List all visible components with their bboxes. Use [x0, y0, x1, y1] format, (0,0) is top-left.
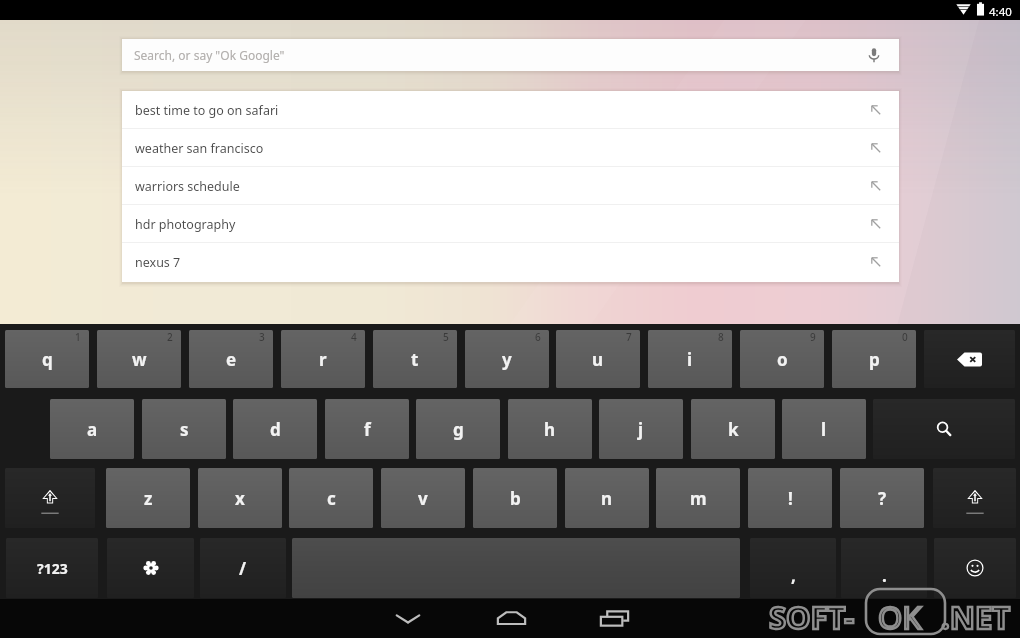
button[interactable]: Voice search	[863, 44, 885, 66]
staticText: ?123	[37, 559, 68, 578]
staticText: d	[270, 418, 281, 441]
button[interactable]: gear	[107, 538, 194, 598]
button[interactable]: d	[233, 399, 317, 459]
button[interactable]: ?	[840, 468, 924, 528]
button[interactable]: emoji	[934, 538, 1016, 598]
button[interactable]: shift	[933, 468, 1016, 528]
button[interactable]: p	[832, 330, 916, 388]
button[interactable]: best time to go on safari	[122, 91, 899, 129]
staticText: SOFT-	[769, 596, 855, 638]
button[interactable]: e	[189, 330, 273, 388]
staticText: 1	[75, 330, 81, 344]
button[interactable]: m	[656, 468, 740, 528]
button[interactable]: Insert suggestion	[867, 139, 885, 157]
button[interactable]: f	[325, 399, 409, 459]
staticText: o	[777, 348, 788, 371]
button[interactable]: x	[198, 468, 282, 528]
staticText: 6	[535, 330, 541, 344]
staticText: x	[235, 487, 245, 510]
staticText: !	[788, 487, 793, 510]
staticText: nexus 7	[135, 254, 181, 271]
button[interactable]: /	[200, 538, 286, 598]
button[interactable]: u	[556, 330, 640, 388]
staticText: y	[502, 348, 512, 371]
staticText: u	[592, 348, 604, 371]
staticText: v	[418, 487, 428, 510]
button[interactable]: ,	[750, 538, 836, 598]
button[interactable]: n	[565, 468, 649, 528]
button[interactable]: Recent apps	[588, 601, 640, 635]
staticText: .NET	[941, 596, 1011, 638]
button[interactable]: k	[691, 399, 775, 459]
button[interactable]: h	[508, 399, 592, 459]
staticText: 8	[718, 330, 724, 344]
button[interactable]: c	[289, 468, 373, 528]
staticText: g	[453, 418, 464, 441]
staticText: c	[327, 487, 336, 510]
staticText: 9	[810, 330, 816, 344]
button[interactable]: Home	[485, 601, 537, 635]
button[interactable]: z	[106, 468, 190, 528]
button[interactable]: ?123	[6, 538, 98, 598]
staticText: t	[411, 348, 419, 371]
button[interactable]: s	[142, 399, 226, 459]
staticText: 3	[259, 330, 265, 344]
button[interactable]: g	[416, 399, 500, 459]
button[interactable]: hdr photography	[122, 205, 899, 243]
staticText: b	[510, 487, 521, 510]
button[interactable]: Insert suggestion	[867, 101, 885, 119]
button[interactable]: backspace	[924, 330, 1015, 388]
button[interactable]: Insert suggestion	[867, 177, 885, 195]
button[interactable]: weather san francisco	[122, 129, 899, 167]
staticText: h	[544, 418, 556, 441]
button[interactable]: o	[740, 330, 824, 388]
staticText: best time to go on safari	[135, 102, 279, 119]
button[interactable]: q	[5, 330, 89, 388]
button[interactable]: space	[292, 538, 740, 598]
staticText: w	[132, 348, 147, 371]
button[interactable]: Insert suggestion	[867, 215, 885, 233]
button[interactable]: b	[473, 468, 557, 528]
staticText: i	[687, 348, 693, 371]
button[interactable]: l	[782, 399, 866, 459]
staticText: Search, or say "Ok Google"	[134, 47, 285, 63]
button[interactable]: Back	[382, 601, 434, 635]
button[interactable]: y	[465, 330, 549, 388]
staticText: hdr photography	[135, 216, 236, 233]
button[interactable]: w	[97, 330, 181, 388]
staticText: l	[821, 418, 827, 441]
button[interactable]: a	[50, 399, 134, 459]
button[interactable]: r	[281, 330, 365, 388]
staticText: p	[869, 348, 880, 371]
staticText: 2	[167, 330, 173, 344]
staticText: warriors schedule	[135, 178, 240, 195]
staticText: s	[180, 418, 189, 441]
button[interactable]: warriors schedule	[122, 167, 899, 205]
staticText: j	[638, 418, 644, 441]
staticText: weather san francisco	[135, 140, 264, 157]
button[interactable]: i	[648, 330, 732, 388]
button[interactable]: v	[381, 468, 465, 528]
button[interactable]: search	[873, 399, 1015, 459]
staticText: q	[42, 348, 53, 371]
staticText: z	[144, 487, 153, 510]
staticText: 0	[902, 330, 908, 344]
button[interactable]: .	[841, 538, 927, 598]
button[interactable]: shift	[5, 468, 95, 528]
staticText: OK	[878, 596, 922, 638]
staticText: e	[226, 348, 237, 371]
staticText: ?	[878, 487, 887, 510]
staticText: m	[690, 487, 707, 510]
button[interactable]: nexus 7	[122, 243, 899, 281]
button[interactable]: t	[373, 330, 457, 388]
staticText: /	[239, 557, 247, 580]
staticText: r	[319, 348, 327, 371]
button[interactable]: !	[748, 468, 832, 528]
staticText: a	[87, 418, 98, 441]
button[interactable]: Insert suggestion	[867, 253, 885, 271]
staticText: 5	[443, 330, 449, 344]
button[interactable]: j	[599, 399, 683, 459]
button[interactable]: Search, or say "Ok Google"	[122, 39, 899, 71]
staticText: ,	[791, 564, 796, 587]
staticText: n	[601, 487, 613, 510]
